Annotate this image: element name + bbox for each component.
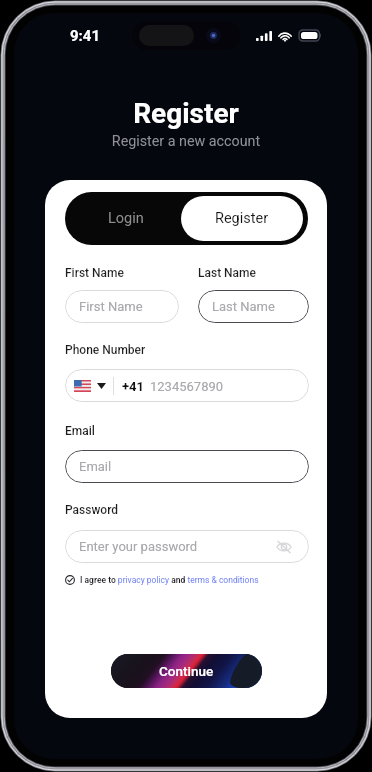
- staticText: Phone Number: [65, 343, 146, 357]
- button[interactable]: Last Name: [198, 290, 309, 323]
- staticText: First Name: [65, 266, 124, 280]
- staticText: Last Name: [198, 266, 256, 280]
- staticText: I agree to privacy policy and terms & co…: [80, 575, 259, 585]
- button[interactable]: Login: [65, 192, 186, 245]
- staticText: Register: [14, 97, 358, 130]
- staticText: First Name: [79, 299, 143, 314]
- button[interactable]: Enter your password: [65, 530, 309, 563]
- staticText: Email: [79, 459, 112, 474]
- staticText: 1234567890: [150, 379, 224, 394]
- staticText: Enter your password: [79, 539, 198, 554]
- staticText: Last Name: [212, 299, 275, 314]
- button[interactable]: +41: [65, 369, 309, 402]
- button[interactable]: Show password: [273, 536, 295, 558]
- button[interactable]: Continue: [111, 654, 262, 688]
- staticText: 9:41: [70, 27, 101, 45]
- staticText: Email: [65, 424, 95, 438]
- staticText: Register a new account: [14, 133, 358, 150]
- button[interactable]: Email: [65, 450, 309, 483]
- button[interactable]: First Name: [65, 290, 179, 323]
- staticText: Continue: [159, 663, 214, 679]
- staticText: +41: [122, 379, 145, 394]
- staticText: Register: [215, 210, 269, 227]
- staticText: Login: [108, 210, 144, 227]
- staticText: Password: [65, 503, 119, 517]
- button[interactable]: Register: [181, 196, 303, 241]
